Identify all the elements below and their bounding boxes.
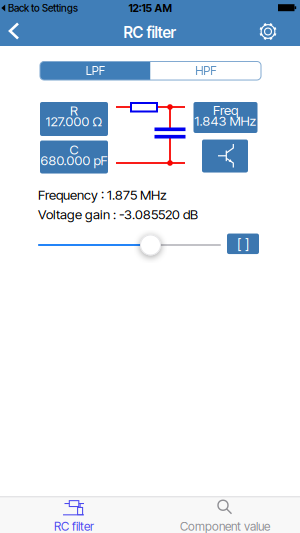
button[interactable]: LPF <box>40 61 150 80</box>
button[interactable]: Range <box>227 234 259 254</box>
staticText: HPF <box>195 63 216 78</box>
button[interactable]: R <box>40 102 108 136</box>
button[interactable]: Transistor <box>202 139 248 172</box>
button[interactable]: Component value <box>150 498 300 533</box>
staticText: Component value <box>180 519 270 533</box>
staticText: Back to Settings <box>8 2 78 14</box>
button[interactable]: HPF <box>150 61 261 80</box>
staticText: LPF <box>86 63 105 78</box>
button[interactable]: Back <box>5 21 21 41</box>
staticText: Voltage gain : -3.085520 dB <box>38 206 198 222</box>
staticText: RC filter <box>54 519 94 533</box>
button[interactable]: RC filter <box>0 498 149 533</box>
staticText: Frequency : 1.875 MHz <box>38 187 167 203</box>
staticText: 12:15 AM <box>128 1 171 14</box>
button[interactable]: Back to Settings <box>1 2 87 14</box>
button[interactable]: Freq <box>193 102 257 133</box>
staticText: 127.000 Ω <box>45 113 102 129</box>
staticText: ] <box>245 235 249 252</box>
button[interactable]: C <box>40 140 108 173</box>
staticText: 1.843 MHz <box>194 113 256 129</box>
button[interactable]: Settings <box>254 17 282 45</box>
staticText: Freq <box>213 102 238 118</box>
staticText: RC filter <box>123 23 176 42</box>
staticText: R <box>70 103 78 119</box>
staticText: C <box>69 142 78 158</box>
staticText: [ <box>237 235 241 252</box>
staticText: 680.000 pF <box>40 152 107 168</box>
